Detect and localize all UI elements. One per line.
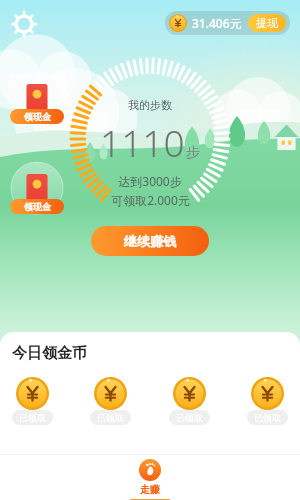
staticText: 已领取 <box>97 412 124 423</box>
button[interactable]: 31.406元 <box>165 11 290 35</box>
staticText: 提现 <box>256 16 278 30</box>
staticText: 1110 <box>100 117 185 167</box>
button[interactable]: 走赚 <box>0 455 300 500</box>
staticText: 领现金 <box>24 201 51 212</box>
button[interactable]: 提现 <box>248 14 286 32</box>
staticText: 走赚 <box>140 483 160 496</box>
button[interactable]: 已领取 <box>90 377 131 425</box>
staticText: 已领取 <box>176 412 203 423</box>
button[interactable]: 已领取 <box>12 377 53 425</box>
button[interactable]: Settings <box>12 12 36 36</box>
button[interactable]: 继续赚钱 <box>91 226 209 256</box>
staticText: 步 <box>186 144 200 162</box>
button[interactable]: 已领取 <box>247 377 288 425</box>
staticText: 继续赚钱 <box>124 233 176 249</box>
button[interactable]: 领现金 <box>6 160 68 214</box>
staticText: 达到3000步 <box>118 173 182 189</box>
staticText: 已领取 <box>19 412 46 423</box>
button[interactable]: 已领取 <box>169 377 210 425</box>
staticText: 可领取2.000元 <box>111 192 190 208</box>
button[interactable]: 领现金 <box>6 70 68 124</box>
staticText: 领现金 <box>24 111 51 122</box>
staticText: 今日领金币 <box>12 344 87 363</box>
staticText: 我的步数 <box>128 98 172 112</box>
staticText: 31.406元 <box>192 15 242 31</box>
staticText: 已领取 <box>254 412 281 423</box>
